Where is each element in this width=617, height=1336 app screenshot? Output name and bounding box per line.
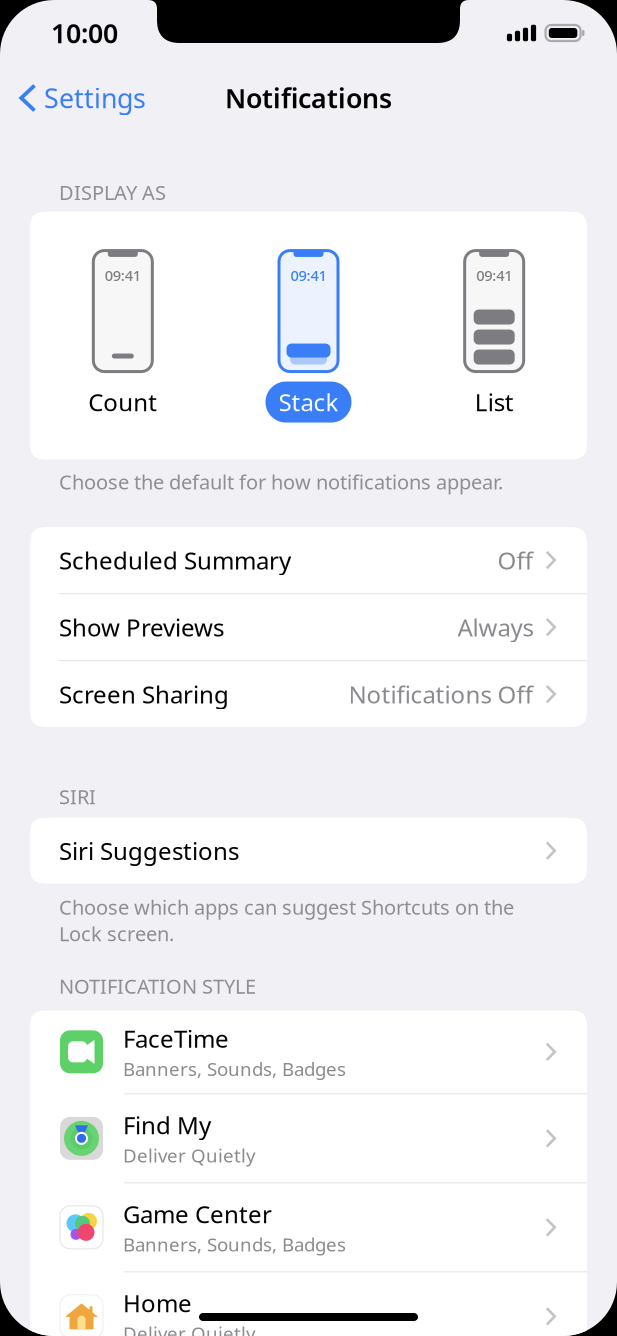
staticText: Notifications Off [348, 678, 533, 710]
staticText: 09:41 [105, 266, 141, 285]
button[interactable]: FaceTime [30, 1010, 587, 1093]
staticText: Banners, Sounds, Badges [123, 1232, 346, 1257]
staticText: Siri Suggestions [59, 835, 239, 867]
button[interactable]: 09:41 [401, 251, 587, 423]
staticText: 09:41 [476, 266, 512, 285]
staticText: Game Center [123, 1198, 272, 1230]
button[interactable]: Find My [30, 1094, 587, 1182]
staticText: Scheduled Summary [59, 544, 291, 576]
staticText: Settings [44, 80, 146, 116]
staticText: DISPLAY AS [59, 179, 166, 206]
staticText: List [475, 386, 514, 418]
button[interactable]: Scheduled Summary [30, 527, 587, 593]
button[interactable]: Siri Suggestions [30, 818, 587, 884]
staticText: Deliver Quietly [123, 1143, 256, 1168]
staticText: Deliver Quietly [123, 1321, 256, 1336]
staticText: SIRI [59, 783, 96, 810]
staticText: Choose which apps can suggest Shortcuts … [59, 894, 514, 947]
staticText: 10:00 [51, 15, 118, 51]
staticText: Home [123, 1287, 192, 1319]
staticText: 09:41 [290, 266, 326, 285]
staticText: Choose the default for how notifications… [59, 469, 503, 495]
button[interactable]: 09:41 [30, 251, 216, 423]
button[interactable]: Screen Sharing [30, 661, 587, 727]
staticText: Banners, Sounds, Badges [123, 1056, 346, 1081]
staticText: Stack [278, 386, 338, 418]
button[interactable]: Show Previews [30, 594, 587, 660]
staticText: NOTIFICATION STYLE [59, 973, 256, 999]
button[interactable]: Settings [0, 74, 146, 122]
button[interactable]: 09:41 [216, 251, 401, 423]
staticText: Notifications [225, 80, 392, 116]
button[interactable]: Home [30, 1272, 587, 1336]
staticText: Find My [123, 1109, 211, 1141]
staticText: Always [457, 611, 533, 643]
staticText: Screen Sharing [59, 678, 229, 710]
staticText: Off [497, 544, 533, 576]
staticText: FaceTime [123, 1022, 229, 1054]
button[interactable]: Game Center [30, 1183, 587, 1271]
staticText: Count [88, 386, 157, 418]
staticText: Show Previews [59, 611, 224, 643]
